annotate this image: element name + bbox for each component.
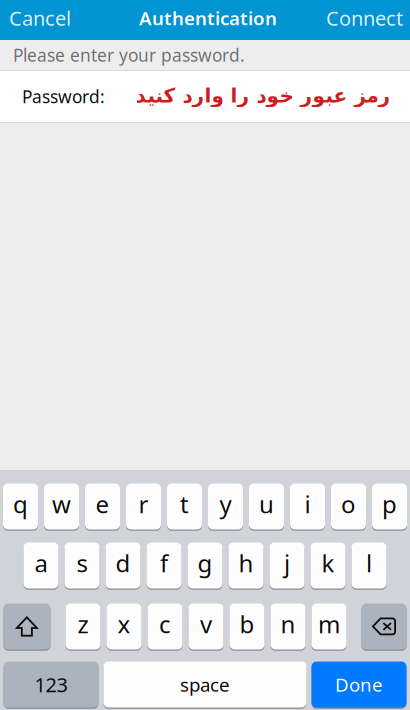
staticText: d [115, 547, 130, 579]
button[interactable]: u [249, 483, 284, 530]
button[interactable]: Done [311, 661, 406, 708]
button[interactable]: v [188, 603, 223, 650]
staticText: Cancel [9, 5, 71, 31]
button[interactable]: w [44, 483, 79, 530]
button[interactable]: t [167, 483, 202, 530]
button[interactable]: Cancel [0, 0, 80, 40]
button[interactable]: q [3, 483, 38, 530]
staticText: Please enter your password. [13, 43, 245, 66]
staticText: q [13, 488, 28, 520]
staticText: u [259, 488, 274, 520]
button[interactable]: Numbers [3, 661, 98, 708]
staticText: رمز عبور خود را وارد کنید [135, 84, 390, 107]
staticText: o [341, 488, 356, 520]
button[interactable]: Connect [317, 0, 410, 40]
staticText: t [180, 488, 189, 520]
staticText: m [318, 608, 340, 640]
button[interactable]: x [106, 603, 141, 650]
staticText: b [239, 608, 254, 640]
button[interactable]: space [103, 661, 306, 708]
staticText: f [160, 547, 168, 579]
staticText: w [52, 488, 71, 520]
button[interactable]: g [187, 542, 222, 589]
staticText: Authentication [139, 6, 277, 30]
staticText: e [95, 488, 109, 520]
button[interactable]: d [105, 542, 140, 589]
button[interactable]: p [372, 483, 407, 530]
staticText: Done [335, 672, 383, 697]
staticText: y [219, 488, 231, 520]
staticText: c [159, 608, 171, 640]
staticText: j [284, 547, 290, 579]
button[interactable]: e [85, 483, 120, 530]
staticText: 123 [34, 671, 67, 698]
staticText: r [138, 488, 148, 520]
button[interactable]: Shift [3, 603, 50, 650]
button[interactable]: s [64, 542, 99, 589]
button[interactable]: y [208, 483, 243, 530]
button[interactable]: c [147, 603, 182, 650]
button[interactable]: Delete [361, 603, 406, 650]
button[interactable]: r [126, 483, 161, 530]
staticText: p [382, 488, 397, 520]
staticText: Connect [326, 5, 403, 31]
button[interactable]: j [269, 542, 304, 589]
staticText: v [200, 608, 212, 640]
staticText: g [197, 547, 212, 579]
button[interactable]: m [311, 603, 346, 650]
button[interactable]: a [23, 542, 58, 589]
staticText: i [304, 488, 310, 520]
staticText: s [76, 547, 87, 579]
button[interactable]: o [331, 483, 366, 530]
staticText: k [321, 547, 334, 579]
button[interactable]: k [310, 542, 345, 589]
button[interactable]: f [146, 542, 181, 589]
button[interactable]: i [290, 483, 325, 530]
button[interactable]: n [270, 603, 305, 650]
staticText: x [117, 608, 130, 640]
button[interactable]: b [229, 603, 264, 650]
staticText: Password: [22, 85, 105, 108]
staticText: space [180, 672, 230, 697]
button[interactable]: z [65, 603, 100, 650]
staticText: z [77, 608, 88, 640]
staticText: l [366, 547, 372, 579]
button[interactable]: h [228, 542, 263, 589]
button[interactable]: l [351, 542, 386, 589]
staticText: a [34, 547, 47, 579]
staticText: n [280, 608, 295, 640]
staticText: h [238, 547, 253, 579]
